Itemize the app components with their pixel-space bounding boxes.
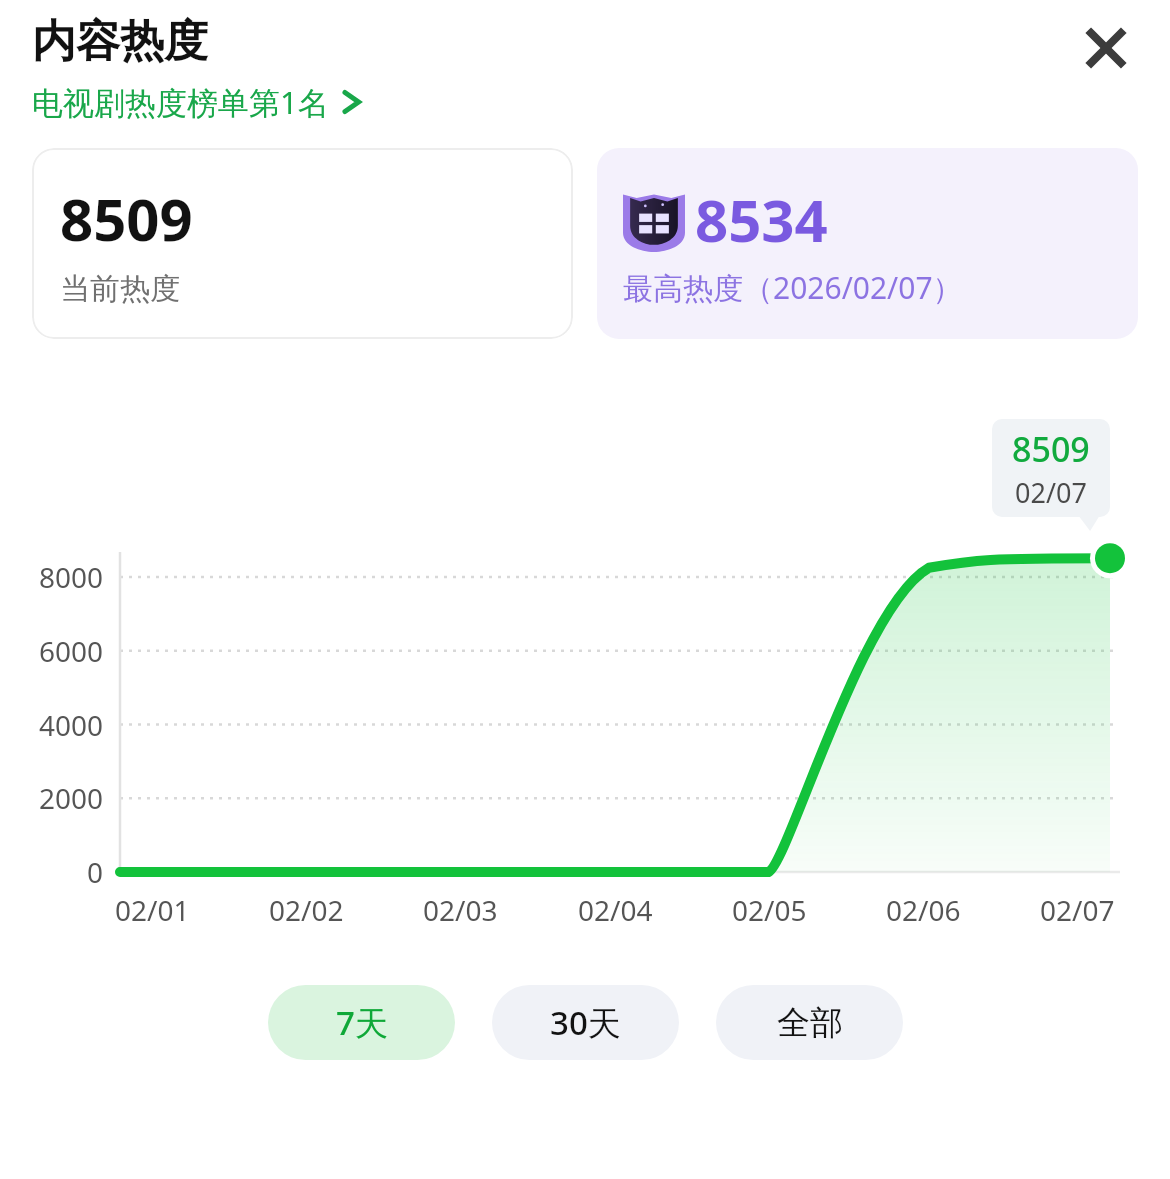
staticText: 4000 — [39, 706, 104, 744]
staticText: 02/02 — [269, 891, 344, 929]
button[interactable]: 电视剧热度榜单第1名 — [32, 79, 369, 125]
button[interactable]: 8534 — [597, 148, 1138, 339]
staticText: 当前热度 — [60, 270, 180, 308]
staticText: 02/03 — [423, 891, 498, 929]
staticText: 30天 — [550, 1000, 621, 1045]
staticText: 7天 — [336, 1000, 388, 1045]
staticText: 最高热度（2026/02/07） — [623, 267, 963, 308]
staticText: 02/01 — [115, 891, 190, 929]
staticText: 8534 — [695, 180, 828, 259]
staticText: 8000 — [39, 558, 104, 596]
staticText: 6000 — [39, 632, 104, 670]
staticText: 全部 — [777, 1002, 843, 1044]
button[interactable]: 8509 — [32, 148, 573, 339]
button[interactable]: 7天 — [268, 985, 455, 1060]
staticText: 电视剧热度榜单第1名 — [32, 81, 329, 123]
button[interactable]: Close — [1072, 14, 1140, 82]
staticText: 02/07 — [1015, 474, 1087, 511]
staticText: 02/05 — [732, 891, 807, 929]
button[interactable]: 30天 — [492, 985, 679, 1060]
staticText: 02/06 — [886, 891, 961, 929]
staticText: 8509 — [1012, 426, 1090, 472]
staticText: 2000 — [39, 779, 104, 817]
staticText: 内容热度 — [32, 14, 208, 69]
staticText: 0 — [87, 853, 104, 891]
staticText: 02/04 — [578, 891, 653, 929]
staticText: 8509 — [60, 179, 193, 258]
staticText: 02/07 — [1040, 891, 1115, 929]
button[interactable]: 全部 — [716, 985, 903, 1060]
